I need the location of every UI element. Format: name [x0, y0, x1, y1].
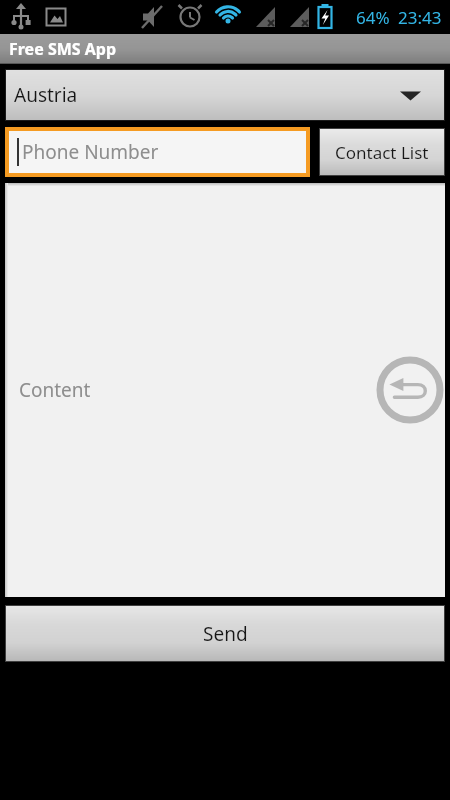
staticText: Austria [14, 82, 78, 108]
button[interactable]: Austria [6, 70, 444, 120]
staticText: Free SMS App [9, 38, 117, 60]
other: New line [378, 358, 442, 422]
staticText: 64% [356, 6, 390, 29]
button[interactable]: Content [5, 183, 445, 597]
button[interactable]: Send [6, 606, 444, 661]
staticText: 23:43 [398, 6, 442, 29]
staticText: Contact List [335, 141, 429, 164]
staticText: Content [19, 377, 91, 403]
button[interactable]: Contact List [320, 129, 444, 175]
staticText: Send [203, 621, 248, 647]
staticText: Phone Number [22, 139, 159, 165]
button[interactable]: Phone Number [9, 131, 306, 173]
